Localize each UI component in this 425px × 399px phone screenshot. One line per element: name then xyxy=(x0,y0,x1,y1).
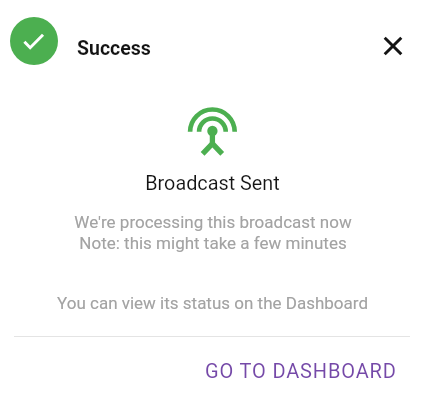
staticText: Success xyxy=(77,37,151,60)
button[interactable]: GO TO DASHBOARD xyxy=(195,350,407,390)
staticText: Broadcast Sent xyxy=(145,172,280,195)
staticText: You can view its status on the Dashboard xyxy=(57,293,368,313)
staticText: GO TO DASHBOARD xyxy=(205,359,397,382)
staticText: We're processing this broadcast now Note… xyxy=(74,212,352,253)
button[interactable]: Close xyxy=(376,29,410,63)
